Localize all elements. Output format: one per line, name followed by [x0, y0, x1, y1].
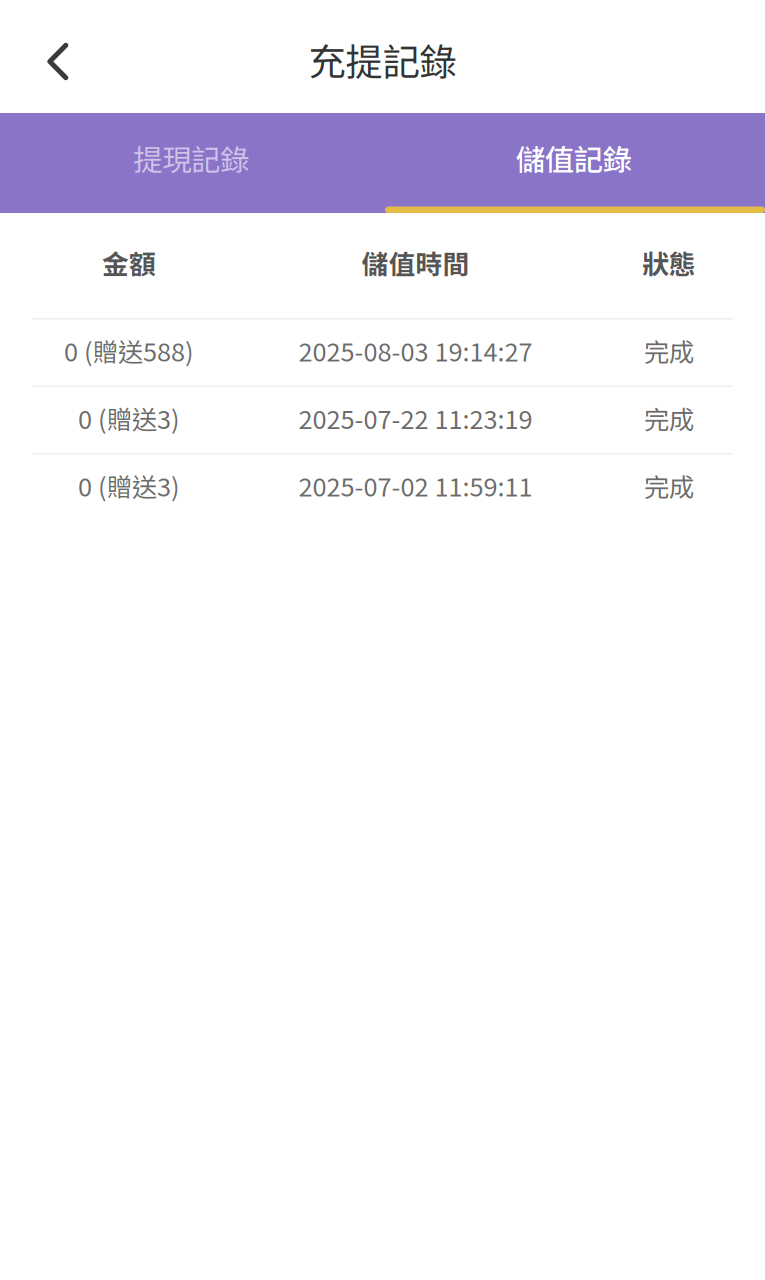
- staticText: 0 (贈送588): [64, 332, 194, 369]
- staticText: 0 (贈送3): [78, 400, 180, 436]
- button[interactable]: 提現記錄: [0, 113, 382, 213]
- staticText: 狀態: [642, 243, 696, 282]
- staticText: 金額: [102, 243, 156, 282]
- staticText: 儲值時間: [361, 243, 469, 282]
- button[interactable]: Back: [0, 0, 104, 113]
- staticText: 充提記錄: [308, 32, 456, 87]
- staticText: 完成: [644, 400, 694, 436]
- staticText: 0 (贈送3): [78, 467, 180, 504]
- staticText: 2025-08-03 19:14:27: [298, 332, 532, 369]
- button[interactable]: 儲值記錄: [382, 113, 765, 213]
- staticText: 完成: [644, 332, 694, 369]
- staticText: 完成: [644, 467, 694, 504]
- staticText: 儲值記錄: [516, 137, 632, 179]
- staticText: 提現記錄: [133, 137, 249, 179]
- staticText: 2025-07-02 11:59:11: [298, 467, 532, 504]
- staticText: 2025-07-22 11:23:19: [298, 400, 532, 436]
